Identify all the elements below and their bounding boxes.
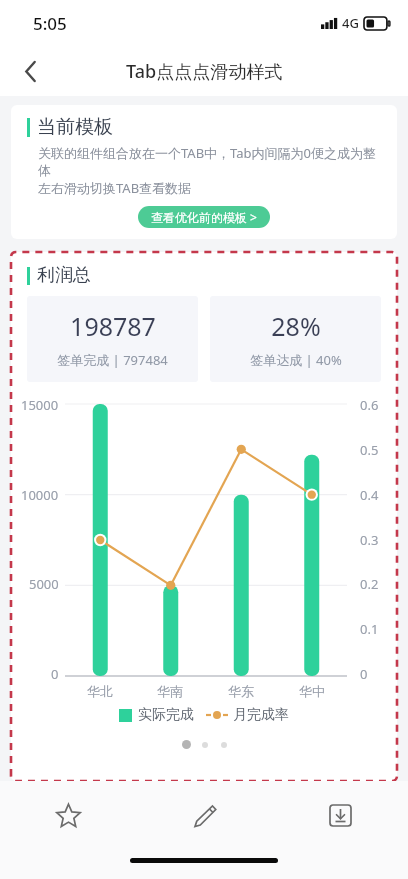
staticText: 5:05 <box>33 12 67 35</box>
button[interactable]: 28% <box>210 296 381 382</box>
staticText: 签单达成 | 40% <box>250 351 342 369</box>
staticText: 0.6 <box>360 396 379 414</box>
staticText: 当前模板 <box>37 115 113 139</box>
button[interactable]: 198787 <box>27 296 198 382</box>
staticText: 198787 <box>70 309 156 343</box>
staticText: 左右滑动切换TAB查看数据 <box>38 179 192 197</box>
staticText: 月完成率 <box>233 706 289 724</box>
staticText: 28% <box>271 309 321 343</box>
staticText: 0.3 <box>360 531 379 549</box>
staticText: 5000 <box>29 575 59 593</box>
staticText: 华中 <box>299 683 325 699</box>
button[interactable]: 查看优化前的模板 > <box>138 206 270 228</box>
staticText: 实际完成 <box>138 706 194 724</box>
staticText: 华东 <box>228 683 254 699</box>
staticText: 华南 <box>157 683 183 699</box>
staticText: 4G <box>342 14 359 32</box>
staticText: 0.4 <box>360 486 379 504</box>
staticText: Tab点点点滑动样式 <box>126 59 283 84</box>
staticText: 关联的组件组合放在一个TAB中，Tab内间隔为0便之成为整体 <box>38 144 387 179</box>
button[interactable]: Favorite <box>0 781 136 849</box>
button[interactable]: Download <box>272 781 408 849</box>
staticText: 10000 <box>21 486 59 504</box>
button[interactable]: Back <box>8 49 52 93</box>
staticText: 0.1 <box>360 620 379 638</box>
staticText: 利润总 <box>37 264 91 287</box>
staticText: 查看优化前的模板 > <box>151 209 257 225</box>
staticText: 0.5 <box>360 441 379 459</box>
staticText: 0 <box>51 665 59 683</box>
staticText: 15000 <box>21 396 59 414</box>
staticText: 华北 <box>87 683 113 699</box>
staticText: 0 <box>360 665 368 683</box>
button[interactable]: Edit <box>136 781 272 849</box>
staticText: 0.2 <box>360 575 379 593</box>
staticText: 签单完成 | 797484 <box>57 351 168 369</box>
